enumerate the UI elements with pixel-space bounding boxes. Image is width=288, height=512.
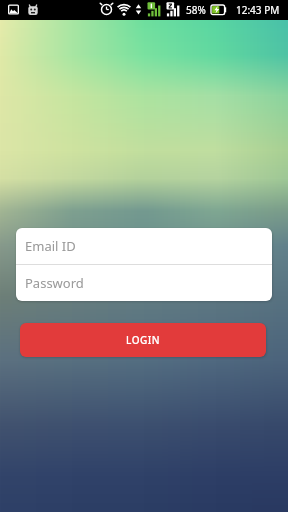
staticText: Password xyxy=(25,274,84,292)
staticText: Email ID xyxy=(25,237,76,255)
staticText: 58% xyxy=(186,3,206,17)
staticText: 12:43 PM xyxy=(236,3,280,17)
button[interactable]: LOGIN xyxy=(20,323,266,357)
button[interactable]: Email ID xyxy=(16,228,272,264)
staticText: LOGIN xyxy=(126,333,161,347)
button[interactable]: Password xyxy=(16,265,272,301)
